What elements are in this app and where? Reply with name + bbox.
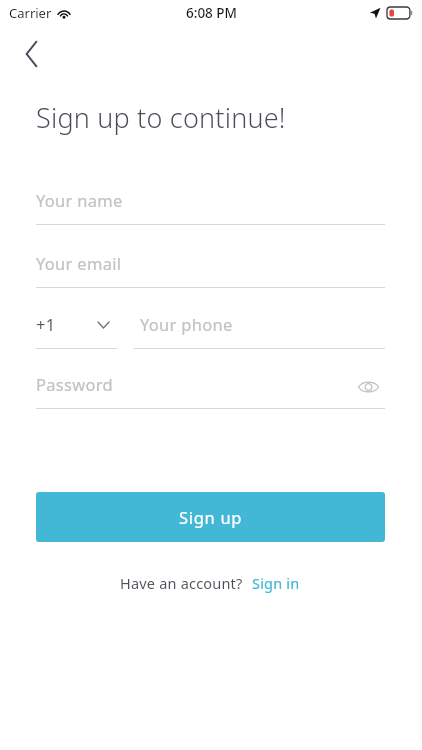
button[interactable]: Show password [351,370,385,404]
staticText: Carrier [9,4,52,22]
staticText: Sign in [252,573,300,593]
button[interactable]: Your phone [134,310,385,349]
button[interactable]: Sign up [36,492,385,542]
staticText: 6:08 PM [186,4,237,22]
staticText: Sign up [179,506,243,528]
button[interactable]: +1 [36,310,117,349]
staticText: Your name [36,189,123,211]
button[interactable]: Password [36,370,385,409]
button[interactable]: Back [10,32,54,76]
button[interactable]: Your name [36,186,385,225]
staticText: +1 [36,313,56,335]
staticText: Your phone [140,313,233,335]
button[interactable]: Your email [36,249,385,288]
staticText: Sign up to continue! [36,99,286,136]
button[interactable]: Sign in [250,570,302,596]
staticText: Have an account? [120,573,243,593]
staticText: Password [36,373,114,395]
staticText: Your email [36,252,122,274]
